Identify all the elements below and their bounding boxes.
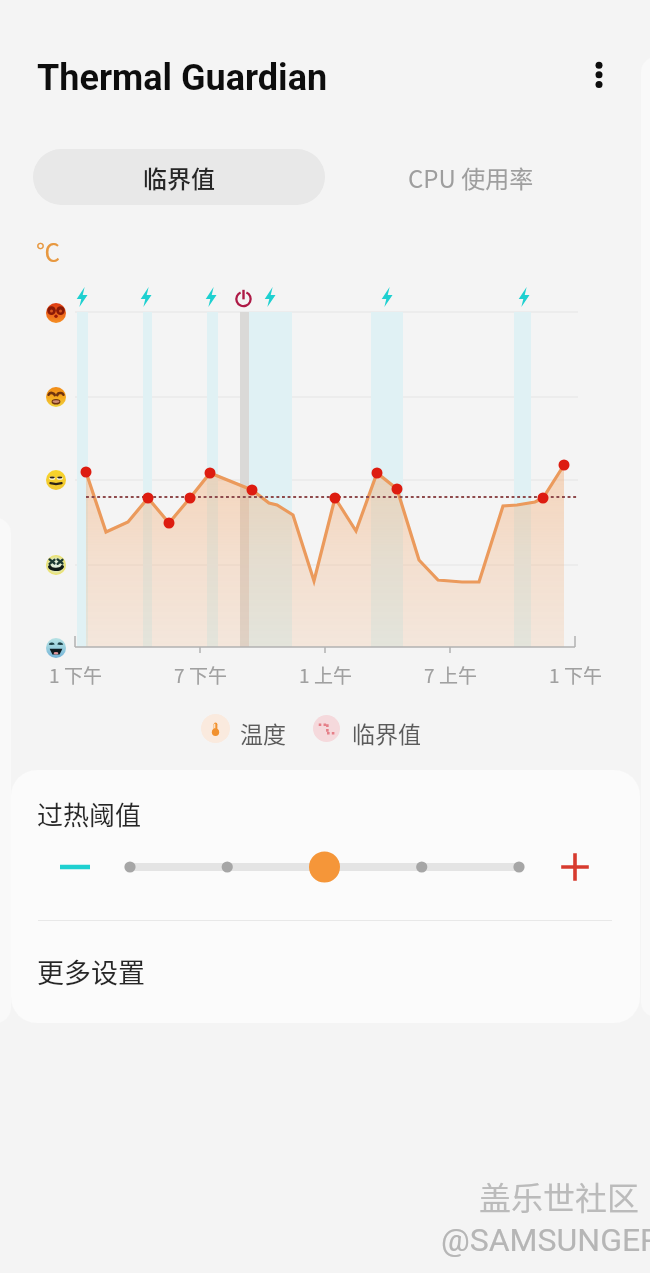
staticText: Thermal Guardian <box>37 57 328 99</box>
staticText: 1 下午 <box>549 661 602 689</box>
staticText: 临界值 <box>143 160 215 195</box>
staticText: ℃ <box>36 233 60 268</box>
staticText: 过热阈值 <box>37 795 142 833</box>
staticText: 1 下午 <box>49 661 102 689</box>
staticText: 更多设置 <box>37 952 145 991</box>
staticText: 1 上午 <box>299 661 352 689</box>
button[interactable]: Increase threshold <box>545 844 605 890</box>
button[interactable]: CPU 使用率 <box>325 149 617 205</box>
staticText: CPU 使用率 <box>408 160 534 195</box>
staticText: @SAMSUNGER <box>441 1221 650 1259</box>
staticText: 临界值 <box>352 716 421 749</box>
button[interactable]: 温度 <box>196 710 436 746</box>
button[interactable]: More options <box>576 44 622 106</box>
staticText: 7 下午 <box>174 661 227 689</box>
button[interactable]: 临界值 <box>33 149 325 205</box>
staticText: 盖乐世社区 <box>479 1173 640 1219</box>
staticText: 7 上午 <box>424 661 477 689</box>
staticText: 温度 <box>240 716 286 749</box>
button[interactable]: Decrease threshold <box>50 844 100 890</box>
button[interactable]: Threshold slider <box>111 844 541 890</box>
